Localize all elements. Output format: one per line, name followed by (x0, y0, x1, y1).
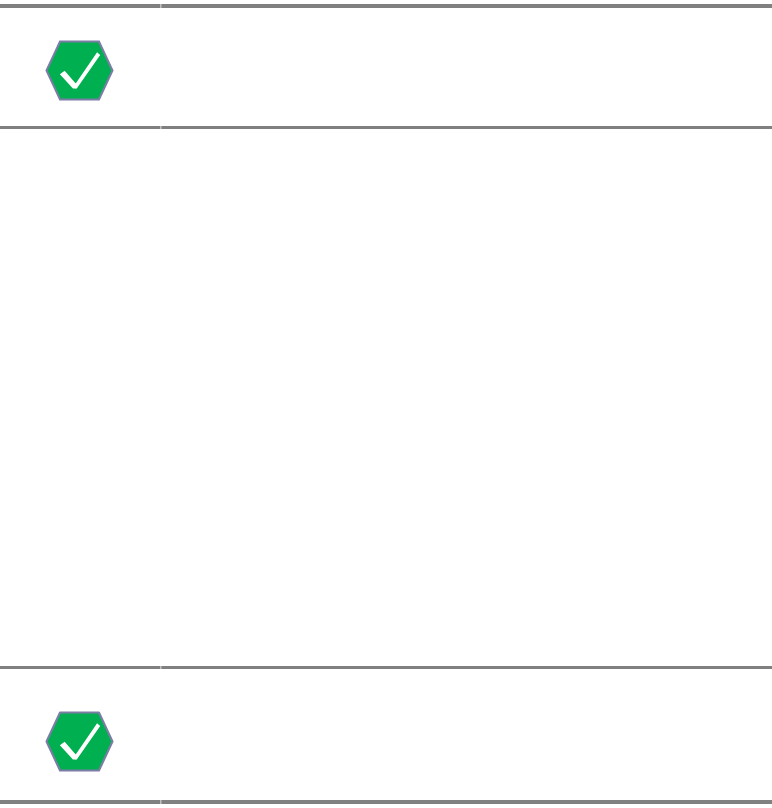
button[interactable]: Approved (45, 711, 114, 772)
button[interactable]: Approved (45, 40, 114, 101)
